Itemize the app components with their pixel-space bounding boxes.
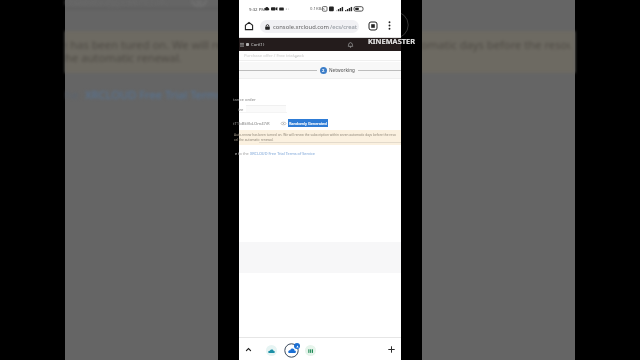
button[interactable]: Switch tabs bbox=[367, 20, 378, 31]
staticText: Randomly Generated bbox=[289, 121, 327, 126]
button[interactable]: Cart(1) bbox=[246, 38, 265, 51]
staticText: KINEMASTER bbox=[368, 36, 415, 46]
staticText: ize bbox=[238, 107, 244, 113]
button[interactable]: Save to cloud bbox=[284, 343, 299, 358]
staticText: 9:32 PM bbox=[249, 6, 266, 12]
button[interactable]: Password suggestion bbox=[305, 345, 316, 356]
staticText: cel the automatic renewal. bbox=[234, 138, 274, 142]
button[interactable]: console.xrcloud.com bbox=[260, 20, 359, 33]
button[interactable]: Randomly Generated bbox=[288, 119, 328, 127]
staticText: e has been tured on. We will renew the s… bbox=[61, 37, 571, 52]
button[interactable]: Add bbox=[385, 343, 398, 356]
staticText: Auto-renew has been turned on. We will r… bbox=[234, 133, 396, 137]
staticText: e to the bbox=[235, 151, 250, 156]
button[interactable]: Home bbox=[243, 20, 255, 32]
button[interactable]: Cloud suggestion bbox=[266, 345, 277, 356]
button[interactable]: Notifications bbox=[346, 38, 355, 51]
staticText: the automatic renewal. bbox=[61, 50, 182, 65]
staticText: the bbox=[61, 87, 82, 102]
button[interactable]: Navigation menu bbox=[239, 38, 244, 51]
button[interactable]: e to the bbox=[235, 151, 315, 156]
button[interactable]: More options bbox=[384, 20, 395, 31]
staticText: 2 bbox=[322, 68, 325, 74]
staticText: /ecs/creat bbox=[330, 23, 357, 31]
staticText: console.xrcloud.com bbox=[273, 23, 330, 31]
staticText: Cart(1) bbox=[251, 42, 265, 48]
staticText: Purchase offer / Free trial pack bbox=[244, 53, 305, 59]
button[interactable]: Expand suggestions bbox=[242, 343, 255, 356]
staticText: tT1bBkVbLOm47iR bbox=[233, 121, 270, 127]
staticText: rrbbas5yj1WH7fK bbox=[64, 0, 167, 9]
staticText: tance order bbox=[233, 97, 256, 103]
staticText: 0.1KB/s bbox=[310, 6, 325, 12]
staticText: XRCLOUD Free Trial Terms of Service bbox=[250, 151, 315, 156]
staticText: Networking bbox=[329, 67, 355, 73]
button[interactable]: 2 bbox=[320, 64, 355, 76]
staticText: XRCLOUD Free Trial Terms of Service bbox=[85, 87, 277, 102]
